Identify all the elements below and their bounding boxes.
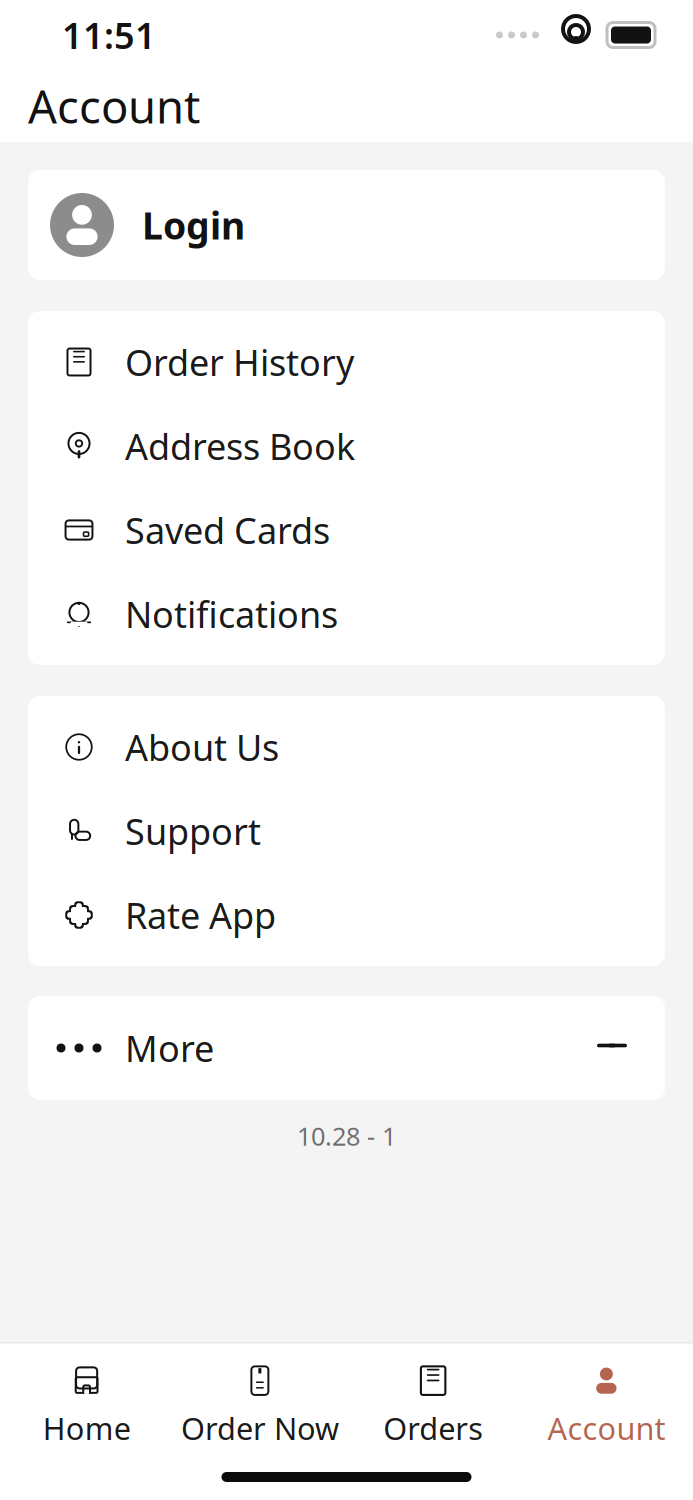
staticText: 10.28 - 1: [297, 1119, 396, 1153]
staticText: 11:51: [62, 11, 156, 59]
button[interactable]: Rate App: [28, 873, 665, 957]
button[interactable]: Order Now: [173, 1359, 346, 1451]
staticText: Notifications: [125, 590, 338, 638]
staticText: Orders: [383, 1408, 483, 1448]
staticText: Order History: [125, 338, 354, 386]
staticText: Account: [547, 1408, 665, 1448]
button[interactable]: About Us: [28, 705, 665, 789]
staticText: More: [125, 1024, 214, 1072]
button[interactable]: Account: [520, 1359, 693, 1451]
staticText: About Us: [125, 723, 279, 771]
staticText: Support: [125, 807, 261, 855]
staticText: Home: [43, 1408, 131, 1448]
button[interactable]: Address Book: [28, 404, 665, 488]
staticText: Rate App: [125, 891, 276, 939]
button[interactable]: Login: [28, 170, 665, 280]
button[interactable]: Notifications: [28, 572, 665, 656]
button[interactable]: Home: [0, 1359, 173, 1451]
staticText: Order Now: [181, 1408, 339, 1448]
button[interactable]: Order History: [28, 320, 665, 404]
staticText: Address Book: [125, 422, 355, 470]
button[interactable]: Saved Cards: [28, 488, 665, 572]
button[interactable]: Support: [28, 789, 665, 873]
staticText: Login: [142, 200, 245, 250]
button[interactable]: More: [28, 996, 665, 1100]
button[interactable]: Orders: [346, 1359, 520, 1451]
staticText: Account: [28, 76, 200, 136]
staticText: Saved Cards: [125, 506, 330, 554]
